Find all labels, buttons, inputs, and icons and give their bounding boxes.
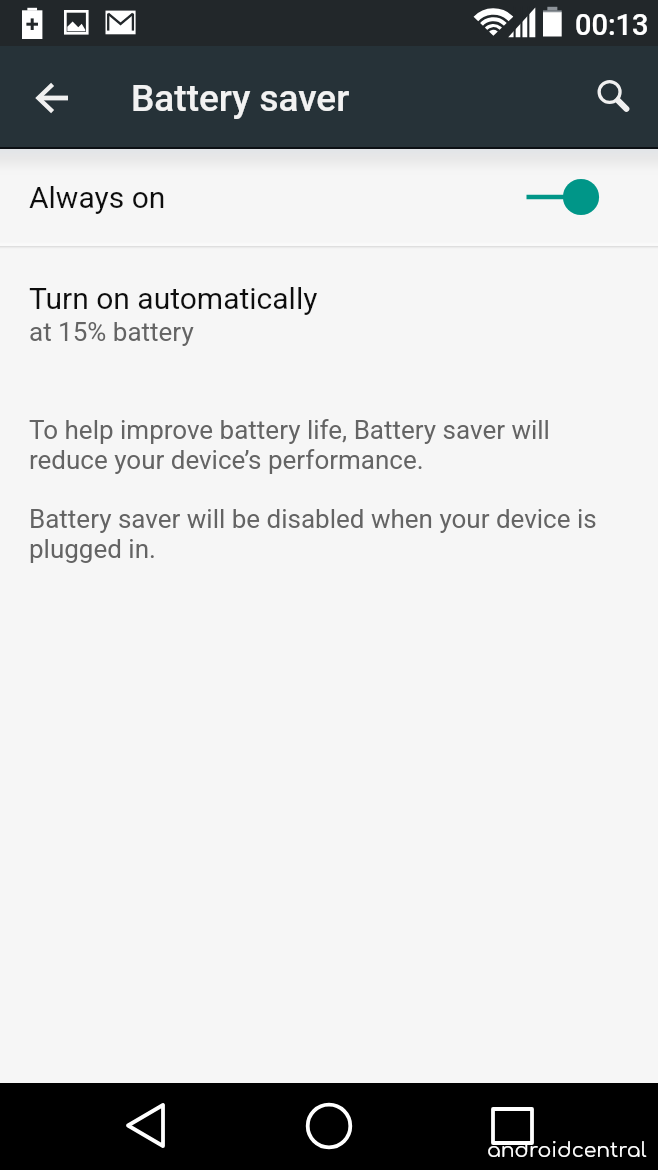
button[interactable]: Back	[100, 1083, 190, 1168]
staticText: Always on	[29, 180, 166, 215]
staticText: Battery saver	[131, 77, 350, 120]
button[interactable]: Recent apps	[467, 1083, 557, 1168]
button[interactable]: Always on	[0, 149, 658, 246]
staticText: 00:13	[575, 8, 649, 42]
staticText: Battery saver will be disabled when your…	[29, 504, 597, 564]
button[interactable]: Search	[584, 68, 640, 124]
staticText: Turn on automatically	[29, 281, 318, 316]
button[interactable]: Navigate up	[25, 70, 81, 126]
button[interactable]: Always on	[512, 166, 620, 228]
staticText: androidcentral	[487, 1139, 647, 1162]
staticText: at 15% battery	[29, 317, 194, 347]
button[interactable]: Home	[284, 1083, 374, 1168]
staticText: To help improve battery life, Battery sa…	[29, 415, 550, 475]
button[interactable]: Turn on automatically	[0, 247, 658, 360]
